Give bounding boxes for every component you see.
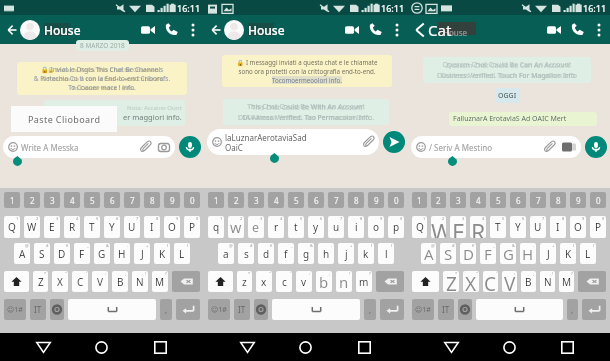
button[interactable]: Cat (428, 20, 477, 40)
button[interactable]: 1 (208, 216, 224, 238)
button[interactable]: Nota: Accaino Ount (44, 100, 185, 126)
button[interactable]: , (567, 299, 578, 320)
button[interactable]: 0 (388, 192, 404, 208)
button[interactable]: 5 (288, 192, 304, 208)
button[interactable]: 8 (550, 216, 566, 238)
button[interactable]: Home (72, 333, 131, 361)
button[interactable]: Write A Messka (3, 136, 175, 158)
button[interactable]: 2 (431, 216, 446, 238)
button[interactable]: Back (208, 22, 223, 37)
button[interactable]: 2 (228, 192, 244, 208)
button[interactable]: Recents (131, 333, 190, 361)
button[interactable]: 9 (368, 192, 384, 208)
button[interactable]: 3 (44, 192, 60, 208)
button[interactable]: Back (422, 333, 480, 361)
button[interactable]: ! (540, 271, 555, 292)
button[interactable]: * (33, 271, 48, 292)
button[interactable]: ; (521, 271, 536, 292)
button[interactable]: + (134, 243, 150, 264)
button[interactable]: ) (580, 243, 596, 264)
button[interactable]: 7 (124, 192, 140, 208)
button[interactable]: 7 (530, 216, 546, 238)
button[interactable]: ! (132, 271, 148, 292)
button[interactable]: Enter (176, 299, 200, 320)
button[interactable]: - (520, 243, 536, 264)
button[interactable]: 2 (24, 216, 40, 238)
button[interactable]: House (44, 22, 81, 38)
button[interactable]: 5 (84, 192, 100, 208)
button[interactable]: 4 (64, 216, 80, 238)
button[interactable]: ? (152, 271, 168, 292)
button[interactable]: Recents (538, 333, 596, 361)
button[interactable]: Shift (208, 271, 233, 292)
button[interactable]: 0 (184, 192, 200, 208)
button[interactable]: laLuznarAerotaviaSad OaiC (207, 129, 379, 155)
button[interactable]: € (258, 243, 274, 264)
button[interactable]: Camera (562, 142, 576, 152)
button[interactable]: ! (336, 271, 352, 292)
button[interactable]: ☺1# (412, 299, 434, 320)
button[interactable]: Voice message (179, 136, 201, 158)
button[interactable]: Home (276, 333, 335, 361)
button[interactable]: 8 (144, 192, 160, 208)
button[interactable]: ( (154, 243, 170, 264)
button[interactable]: & (298, 243, 314, 264)
button[interactable]: Recents (335, 333, 394, 361)
button[interactable]: : (296, 271, 312, 292)
button[interactable]: + (540, 243, 556, 264)
button[interactable]: _ (74, 243, 90, 264)
button[interactable]: 4 (268, 192, 284, 208)
button[interactable]: 1 (4, 192, 20, 208)
button[interactable]: Video call (341, 19, 362, 40)
button[interactable]: 0 (590, 216, 606, 238)
button[interactable]: - (318, 243, 334, 264)
button[interactable]: This Chat Could Be With An Account DIA A… (223, 99, 389, 125)
button[interactable]: 0 (388, 216, 404, 238)
button[interactable]: 3 (248, 192, 264, 208)
button[interactable]: Attach (363, 136, 375, 148)
button[interactable]: @ (14, 243, 30, 264)
button[interactable]: / Seriv A Mestino (411, 136, 581, 158)
button[interactable]: 9 (164, 192, 180, 208)
button[interactable]: @ (218, 243, 234, 264)
button[interactable]: 7 (328, 192, 344, 208)
button[interactable]: Voice message (585, 136, 607, 158)
button[interactable]: 6 (510, 216, 526, 238)
button[interactable]: 8 (348, 216, 364, 238)
button[interactable]: Settings (254, 299, 268, 320)
button[interactable]: More options (389, 22, 404, 37)
button[interactable]: 8 (550, 192, 566, 208)
button[interactable]: 3 (248, 216, 264, 238)
button[interactable]: 2 (24, 192, 40, 208)
button[interactable]: House (248, 22, 285, 38)
button[interactable]: 2 (431, 192, 446, 208)
button[interactable]: , (160, 299, 172, 320)
button[interactable]: 1 (412, 192, 427, 208)
button[interactable]: Home (480, 333, 538, 361)
button[interactable]: 9 (570, 216, 586, 238)
button[interactable]: Space (476, 299, 563, 320)
button[interactable]: Send (383, 131, 405, 153)
button[interactable]: 6 (510, 192, 526, 208)
button[interactable]: " (463, 271, 479, 292)
button[interactable]: # (34, 243, 50, 264)
button[interactable]: 3 (450, 216, 466, 238)
button[interactable]: Enter (380, 299, 404, 320)
button[interactable]: 7 (124, 216, 140, 238)
button[interactable]: Video call (543, 19, 564, 40)
button[interactable]: - (114, 243, 130, 264)
button[interactable]: 4 (470, 216, 486, 238)
button[interactable]: 6 (308, 216, 324, 238)
button[interactable]: 5 (84, 216, 100, 238)
button[interactable]: Backspace (172, 271, 200, 292)
button[interactable]: 0 (590, 192, 606, 208)
button[interactable]: Back (412, 22, 427, 37)
button[interactable]: 5 (490, 192, 506, 208)
button[interactable]: 6 (308, 192, 324, 208)
button[interactable]: Call (161, 19, 182, 40)
button[interactable]: Shift (412, 271, 439, 292)
button[interactable]: Call (567, 19, 588, 40)
button[interactable]: More options (591, 22, 606, 37)
button[interactable]: OGGI (495, 88, 520, 103)
button[interactable]: Space (68, 299, 156, 320)
